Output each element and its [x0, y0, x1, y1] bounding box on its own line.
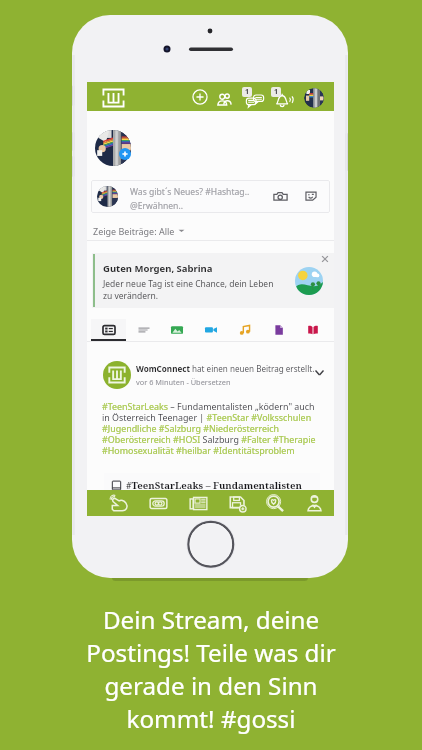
staticText: 1 [245, 87, 250, 97]
button[interactable]: Suche [261, 490, 289, 516]
button[interactable]: Guten Morgen, Sabrina [92, 253, 334, 308]
staticText: #TeenStarLeaks – Fundamentalisten [126, 479, 302, 492]
button[interactable]: Geld [144, 490, 172, 516]
button[interactable]: News [184, 490, 212, 516]
staticText: Dein Stream, deine Postings! Teile was d… [86, 603, 336, 735]
staticText: Was gibt´s Neues? #Hashtag.. [130, 186, 250, 198]
button[interactable]: Notifications [274, 92, 291, 109]
button[interactable]: Musik [227, 319, 262, 341]
button[interactable]: Was gibt´s Neues? #Hashtag.. [91, 180, 330, 213]
button[interactable]: Your story [95, 130, 131, 166]
button[interactable]: Camera [273, 189, 288, 204]
button[interactable]: Sticker [304, 189, 318, 203]
button[interactable]: Profile [304, 88, 324, 108]
button[interactable]: Close [319, 253, 331, 265]
button[interactable]: Videos [193, 319, 228, 341]
button[interactable]: Home [102, 88, 125, 108]
staticText: Guten Morgen, Sabrina [103, 262, 213, 275]
staticText: vor 6 Minuten - Übersetzen [136, 377, 231, 387]
staticText: Jeder neue Tag ist eine Chance, dein Leb… [103, 278, 274, 302]
button[interactable]: Zeige Beiträge: Alle [93, 222, 185, 239]
button[interactable]: Beiträge [91, 319, 126, 341]
button[interactable]: Add story [119, 148, 131, 160]
staticText: 1 [274, 87, 279, 97]
button[interactable]: WomConnect [103, 361, 131, 389]
staticText: #TeenStarLeaks – Fundamentalisten „köder… [102, 400, 321, 457]
button[interactable]: Feed [105, 490, 133, 516]
button[interactable]: Dokumente [261, 319, 296, 341]
button[interactable]: Bilder [159, 319, 194, 341]
button[interactable]: Friends [216, 91, 233, 108]
button[interactable]: Add [192, 89, 208, 105]
button[interactable]: Profil [300, 490, 328, 516]
button[interactable]: Text [126, 319, 161, 341]
button[interactable]: #TeenStarLeaks – Fundamentalisten [104, 473, 320, 498]
button[interactable]: More options [313, 366, 326, 379]
button[interactable]: Messages [246, 91, 264, 109]
button[interactable]: Speichern [223, 490, 251, 516]
staticText: Zeige Beiträge: Alle [93, 225, 175, 237]
staticText: WomConnect hat einen neuen Beitrag erste… [136, 363, 315, 374]
staticText: @Erwähnen.. [130, 200, 184, 212]
button[interactable]: Bücher [295, 319, 330, 341]
